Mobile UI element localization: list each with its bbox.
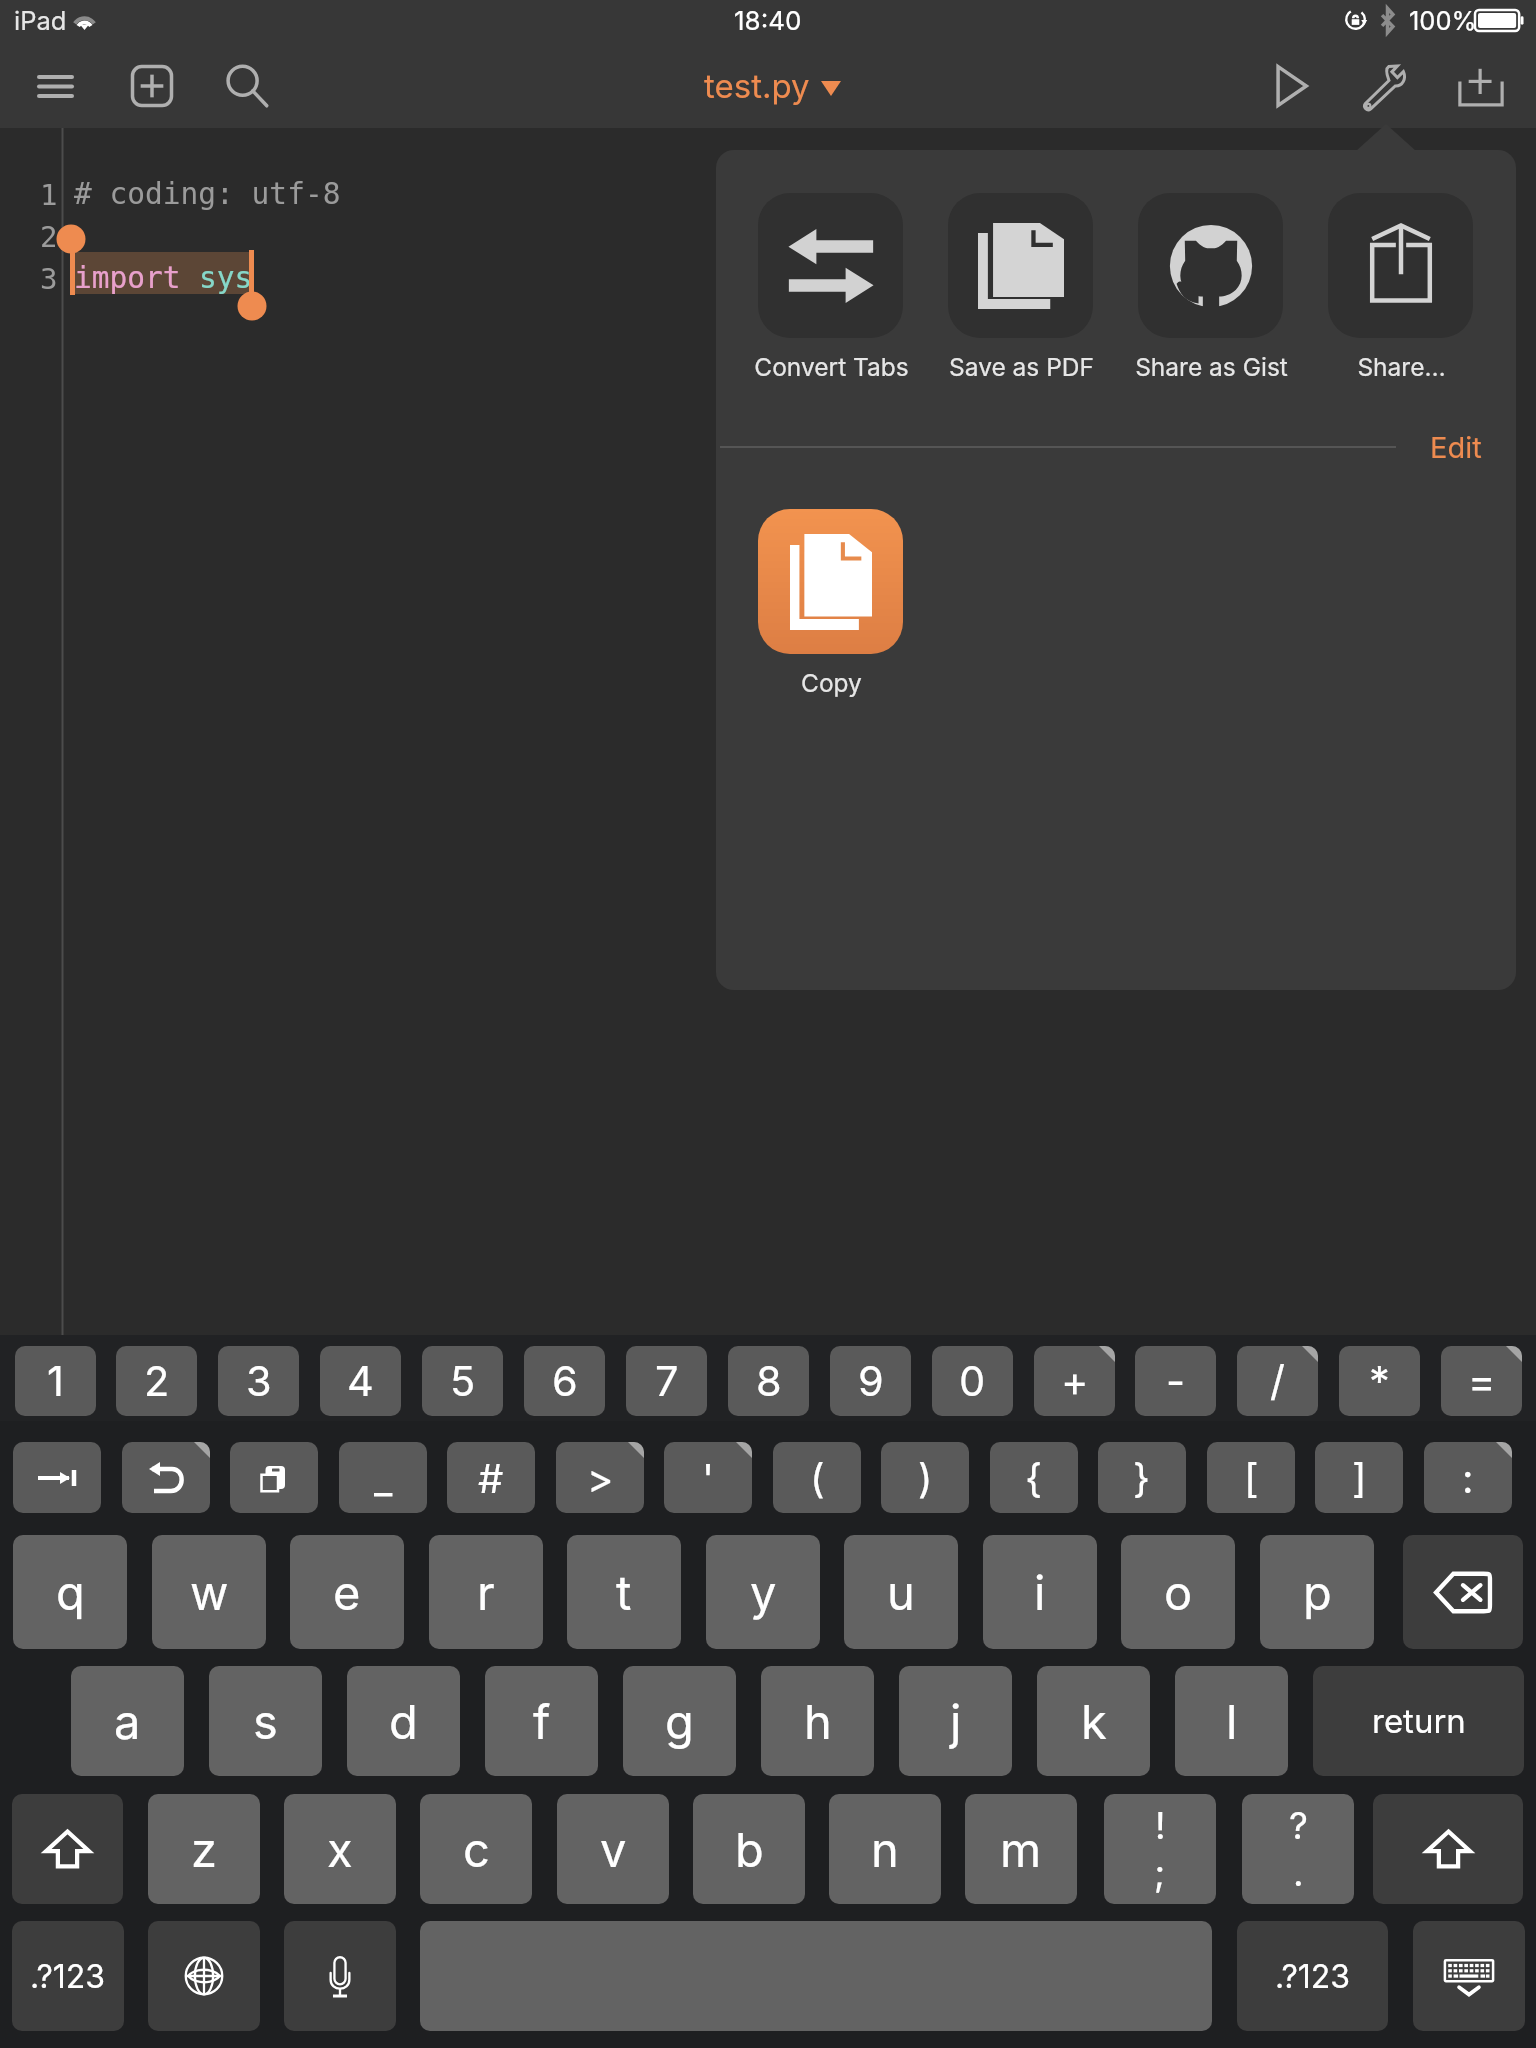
button[interactable]: Paste (230, 1442, 318, 1513)
staticText: Share as Gist (1135, 352, 1288, 382)
button[interactable]: s (209, 1666, 322, 1776)
button[interactable]: { (990, 1442, 1078, 1513)
button[interactable]: ) (881, 1442, 969, 1513)
staticText: r (477, 1564, 495, 1621)
button[interactable]: n (829, 1794, 941, 1904)
button[interactable]: Backspace (1403, 1535, 1523, 1649)
button[interactable]: [ (1207, 1442, 1295, 1513)
button[interactable]: * (1339, 1346, 1420, 1416)
staticText: i (1034, 1564, 1046, 1621)
staticText: 2 (40, 220, 58, 254)
button[interactable]: 5 (422, 1346, 503, 1416)
button[interactable]: h (761, 1666, 874, 1776)
button[interactable]: v (557, 1794, 669, 1904)
button[interactable]: _ (339, 1442, 427, 1513)
button[interactable]: o (1121, 1535, 1235, 1649)
button[interactable]: k (1037, 1666, 1150, 1776)
button[interactable]: Share… (1306, 193, 1496, 338)
button[interactable]: t (567, 1535, 681, 1649)
button[interactable]: l (1175, 1666, 1288, 1776)
button[interactable]: Save as PDF (926, 193, 1116, 338)
button[interactable]: + (1034, 1346, 1115, 1416)
button[interactable]: Search (216, 51, 278, 121)
button[interactable]: ! (1104, 1794, 1216, 1904)
button[interactable]: Tools (1346, 51, 1420, 121)
button[interactable]: Menu (26, 58, 84, 114)
button[interactable]: c (420, 1794, 532, 1904)
button[interactable]: 2 (116, 1346, 197, 1416)
button[interactable]: r (429, 1535, 543, 1649)
button[interactable]: 0 (932, 1346, 1013, 1416)
button[interactable]: 1 (15, 1346, 96, 1416)
button[interactable]: Tab (13, 1442, 101, 1513)
button[interactable]: : (1424, 1442, 1512, 1513)
staticText: = (1468, 1356, 1496, 1406)
button[interactable]: 4 (320, 1346, 401, 1416)
button[interactable]: Copy (736, 509, 926, 654)
button[interactable]: m (965, 1794, 1077, 1904)
staticText: 3 (40, 262, 58, 296)
button[interactable]: New file (122, 51, 182, 121)
staticText: u (887, 1564, 915, 1621)
button[interactable]: Hide keyboard (1413, 1921, 1525, 2031)
button[interactable]: ( (773, 1442, 861, 1513)
button[interactable]: i (983, 1535, 1097, 1649)
button[interactable]: y (706, 1535, 820, 1649)
staticText: ( (810, 1454, 825, 1502)
button[interactable]: Language (148, 1921, 260, 2031)
button[interactable]: return (1313, 1666, 1524, 1776)
staticText: k (1081, 1693, 1107, 1750)
staticText: .?123 (30, 1957, 106, 1996)
staticText: return (1372, 1701, 1466, 1741)
button[interactable]: d (347, 1666, 460, 1776)
staticText: sys (199, 261, 253, 295)
button[interactable]: / (1237, 1346, 1318, 1416)
button[interactable]: test.py (704, 66, 841, 106)
button[interactable]: Shift (12, 1794, 123, 1904)
button[interactable]: 9 (830, 1346, 911, 1416)
staticText: iPad (14, 5, 67, 36)
button[interactable]: ] (1315, 1442, 1403, 1513)
button[interactable]: Add tab (1444, 51, 1518, 121)
button[interactable]: Undo (122, 1442, 210, 1513)
staticText: ? (1289, 1803, 1308, 1848)
button[interactable]: ' (664, 1442, 752, 1513)
button[interactable]: j (899, 1666, 1012, 1776)
button[interactable]: x (284, 1794, 396, 1904)
button[interactable]: b (693, 1794, 805, 1904)
button[interactable]: e (290, 1535, 404, 1649)
staticText: # coding: utf-8 (74, 177, 341, 211)
button[interactable]: Shift (1373, 1794, 1523, 1904)
button[interactable]: z (148, 1794, 260, 1904)
button[interactable]: } (1098, 1442, 1186, 1513)
staticText: c (463, 1821, 490, 1878)
button[interactable]: w (152, 1535, 266, 1649)
button[interactable]: f (485, 1666, 598, 1776)
button[interactable]: 8 (728, 1346, 809, 1416)
button[interactable]: ? (1242, 1794, 1354, 1904)
button[interactable]: = (1441, 1346, 1522, 1416)
button[interactable]: 3 (218, 1346, 299, 1416)
staticText: 9 (858, 1356, 884, 1406)
button[interactable]: g (623, 1666, 736, 1776)
button[interactable]: Convert Tabs (736, 193, 926, 338)
staticText: Save as PDF (949, 352, 1094, 382)
button[interactable]: .?123 (12, 1921, 124, 2031)
button[interactable]: q (13, 1535, 127, 1649)
button[interactable]: a (71, 1666, 184, 1776)
button[interactable]: .?123 (1237, 1921, 1388, 2031)
button[interactable]: > (556, 1442, 644, 1513)
button[interactable]: Share as Gist (1116, 193, 1306, 338)
button[interactable]: 6 (524, 1346, 605, 1416)
staticText: 8 (756, 1356, 782, 1406)
button[interactable]: Run (1256, 51, 1326, 121)
button[interactable]: p (1260, 1535, 1374, 1649)
button[interactable]: 7 (626, 1346, 707, 1416)
button[interactable]: - (1135, 1346, 1216, 1416)
button[interactable]: u (844, 1535, 958, 1649)
button[interactable]: Dictation (284, 1921, 396, 2031)
button[interactable]: # (447, 1442, 535, 1513)
staticText: q (56, 1564, 85, 1621)
button[interactable]: Edit (1408, 418, 1504, 476)
